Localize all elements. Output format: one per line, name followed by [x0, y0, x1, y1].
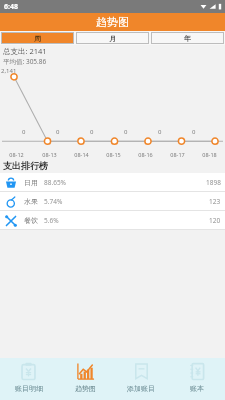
other: 账目明细	[19, 362, 38, 381]
staticText: 支出排行榜	[3, 160, 48, 171]
staticText: 08-12	[9, 151, 24, 158]
button[interactable]: 账目明细	[0, 358, 57, 400]
staticText: 水果	[24, 197, 38, 206]
staticText: 0	[90, 128, 94, 136]
other: 趋势图	[76, 362, 95, 381]
staticText: 趋势图	[96, 15, 129, 29]
staticText: 0	[192, 128, 196, 136]
staticText: 年	[184, 34, 191, 43]
other: 添加账目	[132, 362, 151, 381]
staticText: 0	[22, 128, 26, 136]
button[interactable]: 账本	[169, 358, 225, 400]
other: 账本	[188, 362, 207, 381]
button[interactable]: 月	[76, 32, 149, 44]
button[interactable]: 餐饮	[0, 211, 225, 229]
staticText: 08-13	[42, 151, 57, 158]
staticText: 5.6%	[44, 216, 59, 225]
staticText: 趋势图	[75, 384, 96, 393]
staticText: 添加账目	[127, 384, 155, 393]
staticText: 08-14	[74, 151, 89, 158]
staticText: 平均值: 305.86	[3, 57, 47, 66]
staticText: 账目明细	[15, 384, 43, 393]
staticText: 0	[124, 128, 128, 136]
staticText: 88.65%	[44, 178, 67, 187]
staticText: 08-15	[106, 151, 121, 158]
staticText: 5.74%	[44, 197, 63, 206]
staticText: 08-16	[138, 151, 153, 158]
staticText: 0	[158, 128, 162, 136]
staticText: 08-17	[170, 151, 185, 158]
staticText: 120	[209, 216, 221, 225]
staticText: 0	[56, 128, 60, 136]
staticText: 123	[209, 197, 221, 206]
button[interactable]: 趋势图	[57, 358, 113, 400]
staticText: 日用	[24, 178, 38, 187]
staticText: 周	[34, 34, 41, 43]
staticText: 餐饮	[24, 216, 38, 225]
staticText: 6:48	[4, 2, 18, 12]
staticText: 08-18	[202, 151, 217, 158]
button[interactable]: 年	[151, 32, 224, 44]
staticText: 账本	[190, 384, 204, 393]
button[interactable]: 水果	[0, 192, 225, 210]
staticText: 月	[109, 34, 116, 43]
staticText: 1898	[206, 178, 221, 187]
staticText: 总支出: 2141	[3, 46, 47, 56]
button[interactable]: 添加账目	[113, 358, 169, 400]
button[interactable]: 日用	[0, 173, 225, 191]
button[interactable]: 周	[1, 32, 74, 44]
staticText: 2,141	[1, 67, 17, 75]
